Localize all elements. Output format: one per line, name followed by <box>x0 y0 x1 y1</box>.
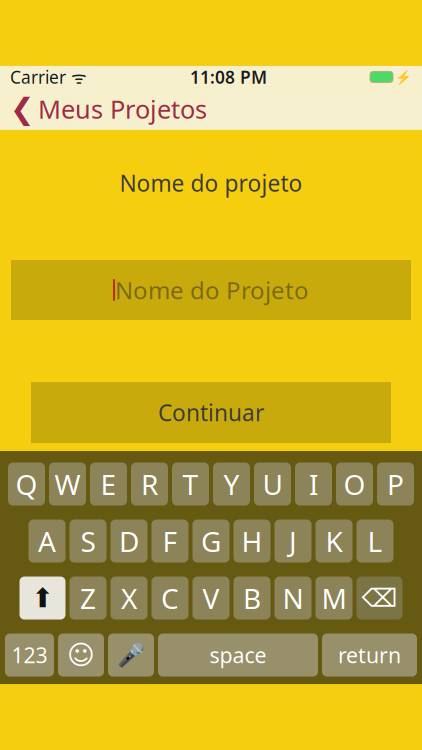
staticText: 11:08 PM <box>190 65 267 88</box>
staticText: space <box>209 641 266 669</box>
button[interactable]: S <box>69 520 106 563</box>
button[interactable]: P <box>377 463 414 506</box>
staticText: Y <box>223 465 239 503</box>
staticText: 🎤 <box>117 642 145 668</box>
button[interactable]: L <box>356 520 393 563</box>
button[interactable]: T <box>172 463 209 506</box>
button[interactable]: F <box>151 520 188 563</box>
button[interactable]: K <box>315 520 352 563</box>
button[interactable]: space <box>158 634 318 677</box>
button[interactable]: E <box>90 463 127 506</box>
button[interactable]: V <box>192 577 229 620</box>
staticText: X <box>121 579 137 617</box>
staticText: ⚡ <box>395 69 412 84</box>
staticText: D <box>119 522 139 560</box>
button[interactable]: Continuar <box>31 382 391 443</box>
button[interactable]: I <box>295 463 332 506</box>
staticText: K <box>325 522 342 560</box>
staticText: ⬆ <box>31 583 53 613</box>
staticText: N <box>282 579 303 617</box>
staticText: S <box>80 522 95 560</box>
staticText: C <box>161 579 179 617</box>
button[interactable]: Q <box>8 463 45 506</box>
button[interactable]: U <box>254 463 291 506</box>
staticText: B <box>243 579 261 617</box>
staticText: Continuar <box>158 397 264 428</box>
staticText: R <box>141 465 158 503</box>
button[interactable]: Y <box>213 463 250 506</box>
button[interactable]: M <box>315 577 352 620</box>
staticText: ☺ <box>67 640 95 670</box>
staticText: ⌫ <box>361 584 397 612</box>
button[interactable]: Z <box>69 577 106 620</box>
button[interactable]: D <box>110 520 147 563</box>
button[interactable]: J <box>274 520 311 563</box>
staticText: H <box>241 522 262 560</box>
staticText: I <box>309 465 318 503</box>
staticText: F <box>162 522 177 560</box>
staticText: P <box>387 465 404 503</box>
staticText: W <box>54 465 80 503</box>
button[interactable]: ❮ <box>0 88 217 130</box>
button[interactable]: C <box>151 577 188 620</box>
staticText: L <box>367 522 382 560</box>
staticText: return <box>338 641 401 669</box>
staticText: ❮ <box>10 92 35 126</box>
button[interactable]: N <box>274 577 311 620</box>
staticText: T <box>182 465 198 503</box>
button[interactable]: H <box>233 520 270 563</box>
staticText: A <box>38 522 56 560</box>
button[interactable]: R <box>131 463 168 506</box>
button[interactable]: 123 <box>5 634 54 677</box>
button[interactable]: return <box>322 634 417 677</box>
staticText: 123 <box>11 641 47 669</box>
button[interactable]: O <box>336 463 373 506</box>
button[interactable]: Dictate <box>108 634 154 677</box>
staticText: U <box>262 465 282 503</box>
button[interactable]: Delete <box>356 577 402 620</box>
staticText: E <box>100 465 116 503</box>
staticText: ᯤ <box>66 65 87 88</box>
button[interactable]: Shift <box>19 577 65 620</box>
staticText: G <box>201 522 221 560</box>
staticText: Nome do Projeto <box>115 274 309 306</box>
button[interactable]: B <box>233 577 270 620</box>
staticText: M <box>321 579 346 617</box>
staticText: J <box>289 522 297 560</box>
staticText: O <box>343 465 365 503</box>
button[interactable]: Emoji <box>58 634 104 677</box>
staticText: Carrier <box>10 65 66 88</box>
staticText: Z <box>80 579 96 617</box>
button[interactable]: A <box>28 520 65 563</box>
staticText: V <box>202 579 219 617</box>
staticText: Meus Projetos <box>38 92 207 126</box>
button[interactable]: X <box>110 577 147 620</box>
button[interactable]: W <box>49 463 86 506</box>
staticText: Q <box>15 465 37 503</box>
button[interactable]: G <box>192 520 229 563</box>
staticText: Nome do projeto <box>119 168 302 198</box>
